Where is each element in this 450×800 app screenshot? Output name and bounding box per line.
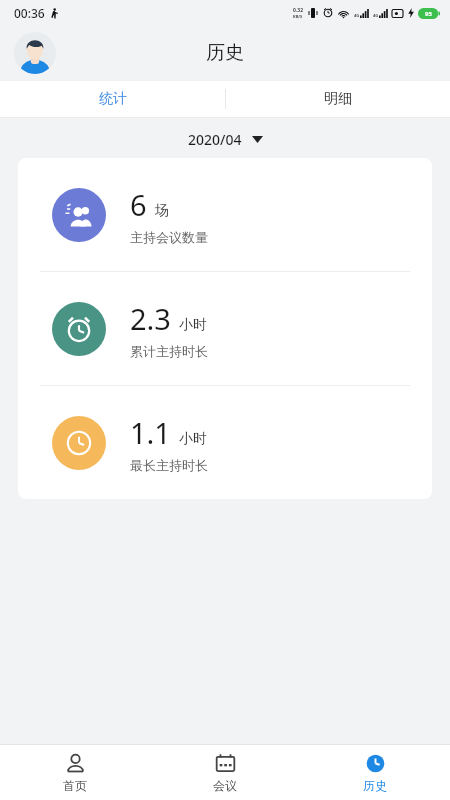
staticText: 4G [373,13,379,18]
staticText: 小时 [179,430,207,448]
staticText: 明细 [324,90,352,108]
staticText: 0.32 [293,7,303,14]
staticText: KB/S [293,14,303,19]
button[interactable]: 会议 [150,745,300,800]
staticText: 6 [130,185,147,224]
button[interactable]: 1.1 [18,386,432,499]
staticText: 1.1 [130,413,171,452]
staticText: 主持会议数量 [130,229,208,245]
staticText: 最长主持时长 [130,457,208,473]
staticText: 首页 [63,778,87,793]
staticText: 00:36 [14,5,45,21]
staticText: 历史 [363,778,387,793]
staticText: 小时 [179,316,207,334]
button[interactable]: 2020/04 [0,126,450,152]
staticText: 2.3 [130,299,171,338]
staticText: 统计 [99,90,127,108]
button[interactable]: Profile [14,32,56,74]
staticText: 4G [354,13,360,18]
button[interactable]: 统计 [0,81,225,117]
staticText: 累计主持时长 [130,343,208,359]
staticText: 2020/04 [188,130,242,149]
button[interactable]: 历史 [300,745,450,800]
staticText: 95 [425,10,432,18]
staticText: 会议 [213,778,237,793]
button[interactable]: 首页 [0,745,150,800]
button[interactable]: 2.3 [18,272,432,385]
staticText: 历史 [206,41,244,65]
button[interactable]: 明细 [225,81,450,117]
staticText: 场 [155,202,169,220]
button[interactable]: 6 [18,158,432,271]
